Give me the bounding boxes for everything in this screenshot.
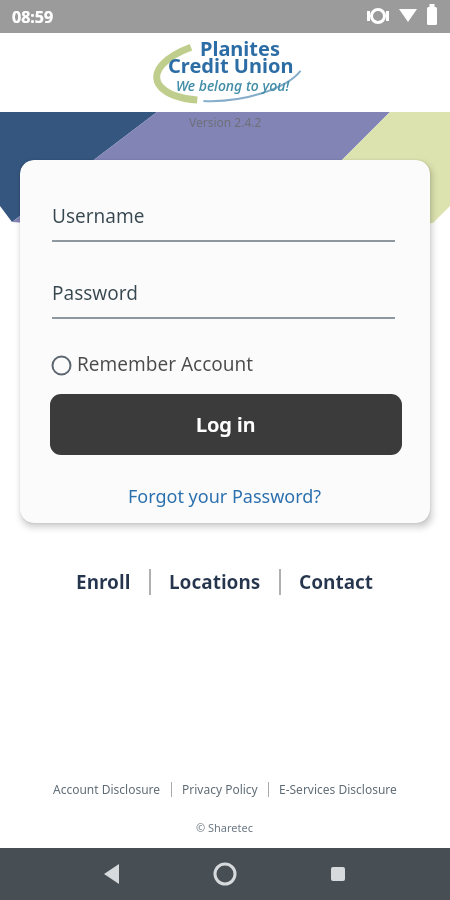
staticText: Credit Union bbox=[168, 52, 294, 79]
staticText: 08:59 bbox=[12, 6, 54, 28]
button[interactable] bbox=[318, 854, 358, 894]
button[interactable]: E-Services Disclosure bbox=[279, 781, 397, 797]
staticText: Username bbox=[52, 203, 145, 229]
staticText: We belong to you! bbox=[176, 76, 290, 95]
button[interactable]: Account Disclosure bbox=[53, 781, 161, 797]
button[interactable]: Forgot your Password? bbox=[128, 484, 322, 509]
staticText: © Sharetec bbox=[196, 820, 254, 835]
button[interactable] bbox=[205, 854, 245, 894]
button[interactable]: Enroll bbox=[76, 569, 131, 595]
staticText: Remember Account bbox=[77, 351, 254, 376]
button[interactable]: Remember Account bbox=[51, 351, 254, 376]
staticText: Planites bbox=[200, 35, 280, 62]
staticText: Log in bbox=[196, 411, 256, 438]
staticText: Version 2.4.2 bbox=[189, 114, 262, 130]
button[interactable] bbox=[92, 854, 132, 894]
button[interactable]: Contact bbox=[299, 569, 374, 595]
button[interactable]: Log in bbox=[50, 394, 402, 455]
button[interactable]: Locations bbox=[169, 569, 261, 595]
button[interactable]: Privacy Policy bbox=[182, 781, 258, 797]
staticText: Password bbox=[52, 280, 138, 306]
